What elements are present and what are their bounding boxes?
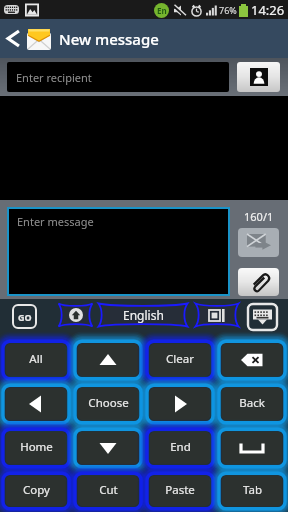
- staticText: Copy: [23, 482, 50, 498]
- staticText: Enter recipient: [16, 70, 92, 85]
- button[interactable]: right: [144, 382, 216, 426]
- button[interactable]: del: [216, 338, 288, 382]
- staticText: Tab: [243, 482, 262, 498]
- button[interactable]: Choose: [72, 382, 144, 426]
- staticText: GO: [18, 311, 32, 323]
- button[interactable]: Input mode: [194, 302, 240, 328]
- button[interactable]: Copy: [0, 470, 72, 512]
- button[interactable]: All: [0, 338, 72, 382]
- staticText: Back: [239, 395, 265, 411]
- staticText: English: [123, 307, 164, 323]
- staticText: Cut: [99, 482, 118, 498]
- button[interactable]: Enter recipient: [7, 62, 229, 92]
- staticText: 160/1: [244, 209, 274, 224]
- button[interactable]: End: [144, 426, 216, 470]
- button[interactable]: up: [72, 338, 144, 382]
- button[interactable]: space: [216, 426, 288, 470]
- button[interactable]: Home: [0, 426, 72, 470]
- button[interactable]: Tab: [216, 470, 288, 512]
- button[interactable]: Paste: [144, 470, 216, 512]
- staticText: 14:26: [251, 1, 285, 19]
- button[interactable]: Attach file: [238, 268, 279, 296]
- button[interactable]: left: [0, 382, 72, 426]
- button[interactable]: Send message: [238, 228, 279, 257]
- button[interactable]: English: [97, 302, 189, 328]
- button[interactable]: Cut: [72, 470, 144, 512]
- button[interactable]: Enter message: [9, 209, 228, 294]
- staticText: Home: [20, 439, 53, 455]
- button[interactable]: Back: [216, 382, 288, 426]
- staticText: Paste: [165, 482, 195, 498]
- staticText: New message: [59, 29, 159, 49]
- staticText: Clear: [166, 351, 194, 367]
- button[interactable]: Go: [13, 305, 36, 328]
- button[interactable]: Navigate up: [0, 19, 27, 58]
- staticText: En: [157, 5, 167, 16]
- button[interactable]: Shift: [57, 302, 94, 328]
- staticText: Enter message: [17, 214, 94, 229]
- button[interactable]: Add recipient from contacts: [237, 62, 280, 92]
- staticText: All: [29, 351, 43, 367]
- button[interactable]: Hide keyboard: [248, 304, 277, 330]
- button[interactable]: down: [72, 426, 144, 470]
- staticText: End: [170, 439, 191, 455]
- button[interactable]: Clear: [144, 338, 216, 382]
- staticText: 76%: [219, 4, 237, 16]
- staticText: Choose: [88, 395, 129, 411]
